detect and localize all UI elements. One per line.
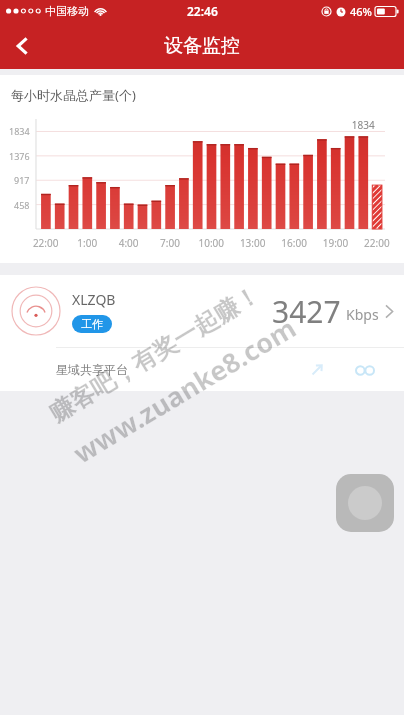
button[interactable]: AssistiveTouch [336, 474, 394, 532]
staticText: XLZQB [72, 290, 116, 309]
button[interactable]: 星域共享平台 [0, 348, 404, 391]
button[interactable]: Upload [300, 353, 334, 387]
button[interactable]: Back [0, 23, 46, 69]
staticText: 设备监控 [164, 34, 240, 58]
staticText: 22:46 [187, 3, 218, 19]
staticText: 3427 [272, 291, 341, 332]
staticText: 星域共享平台 [56, 362, 128, 377]
staticText: Kbps [346, 305, 379, 324]
button[interactable]: XLZQB [0, 275, 404, 347]
staticText: 每小时水晶总产量(个) [11, 86, 136, 104]
staticText: 中国移动 [45, 4, 89, 18]
staticText: 工作 [81, 317, 103, 331]
button[interactable]: Link [348, 353, 382, 387]
staticText: 46% [350, 4, 372, 19]
